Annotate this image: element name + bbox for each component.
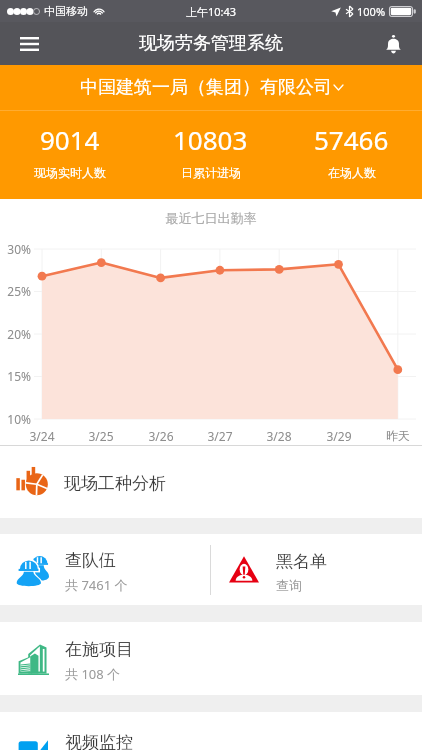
staticText: 20% <box>0 326 31 342</box>
staticText: 30% <box>0 241 31 257</box>
staticText: 在场人数 <box>328 165 376 180</box>
staticText: 最近七日出勤率 <box>0 210 422 226</box>
staticText: 57466 <box>314 122 389 157</box>
button[interactable]: Notifications <box>374 25 412 63</box>
staticText: 现场实时人数 <box>34 165 106 180</box>
staticText: 100% <box>357 4 386 19</box>
button[interactable]: 中国建筑一局（集团）有限公司 <box>0 65 422 110</box>
staticText: 共 108 个 <box>65 665 121 683</box>
button[interactable]: 57466 <box>281 111 422 199</box>
staticText: 昨天 <box>376 428 420 443</box>
staticText: 3/27 <box>198 428 242 444</box>
staticText: 查队伍 <box>65 550 116 571</box>
button[interactable]: 在施项目 <box>0 622 422 695</box>
button[interactable]: Menu <box>10 25 48 63</box>
staticText: 现场工种分析 <box>64 473 166 494</box>
staticText: 3/24 <box>20 428 64 444</box>
button[interactable]: 视频监控 <box>0 712 422 750</box>
staticText: 3/29 <box>317 428 361 444</box>
staticText: 10803 <box>173 122 248 157</box>
staticText: 黑名单 <box>276 551 327 572</box>
staticText: 3/25 <box>79 428 123 444</box>
staticText: 上午10:43 <box>186 4 237 19</box>
staticText: 中国建筑一局（集团）有限公司 <box>80 76 332 99</box>
staticText: 现场劳务管理系统 <box>139 32 283 55</box>
button[interactable]: 10803 <box>140 111 281 199</box>
button[interactable]: 9014 <box>0 111 140 199</box>
button[interactable]: 查队伍 <box>0 534 210 605</box>
staticText: 视频监控 <box>65 732 133 750</box>
staticText: 10% <box>0 411 31 427</box>
button[interactable]: 黑名单 <box>211 534 422 605</box>
staticText: 日累计进场 <box>181 165 241 180</box>
staticText: 查询 <box>276 577 302 593</box>
staticText: 共 7461 个 <box>65 576 128 594</box>
staticText: 9014 <box>40 122 100 157</box>
staticText: 中国移动 <box>44 4 88 18</box>
staticText: 15% <box>0 368 31 384</box>
button[interactable]: 现场工种分析 <box>0 446 422 518</box>
staticText: 25% <box>0 283 31 299</box>
staticText: 在施项目 <box>65 639 133 660</box>
staticText: 3/26 <box>139 428 183 444</box>
staticText: 3/28 <box>257 428 301 444</box>
